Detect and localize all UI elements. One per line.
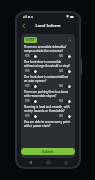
staticText: YES [25, 99, 30, 103]
button[interactable]: YES [24, 114, 38, 118]
button[interactable]: ENTRY [26, 38, 35, 42]
button[interactable]: YES [24, 54, 38, 58]
staticText: YES [25, 114, 30, 118]
staticText: The front door is accessible without a l… [24, 60, 72, 68]
staticText: YES [25, 84, 30, 88]
staticText: YES [25, 54, 30, 58]
button[interactable]: YES [24, 69, 38, 73]
staticText: NO [59, 69, 64, 73]
staticText: ENTRY [26, 38, 35, 42]
button[interactable]: Back [20, 22, 28, 30]
button[interactable]: NO [58, 69, 72, 73]
button[interactable]: YES [24, 84, 38, 88]
button[interactable]: YES [24, 99, 38, 103]
button[interactable]: Recent apps [62, 159, 69, 166]
button[interactable]: NO [58, 99, 72, 103]
staticText: The front door is automated/has an auto … [24, 75, 72, 83]
staticText: You are able to access every point with … [24, 120, 72, 128]
staticText: NO [59, 54, 64, 58]
staticText: NO [59, 114, 64, 118]
staticText: There are accessible sidewalks/ramps out… [24, 45, 72, 53]
staticText: Flooring is level and smooth, with no tr… [24, 105, 72, 113]
button[interactable]: Home [45, 159, 52, 166]
button[interactable]: Back [27, 159, 34, 166]
staticText: NO [59, 84, 64, 88]
button[interactable]: Collapse section [67, 38, 72, 43]
staticText: Load Inform [35, 23, 61, 29]
staticText: There are parking/free bus lanes with re… [24, 90, 72, 98]
staticText: Submit [42, 150, 54, 154]
staticText: YES [25, 69, 30, 73]
staticText: NO [59, 99, 64, 103]
button[interactable]: NO [58, 84, 72, 88]
button[interactable]: Submit [21, 148, 75, 155]
button[interactable]: NO [58, 54, 72, 58]
button[interactable]: NO [58, 114, 72, 118]
